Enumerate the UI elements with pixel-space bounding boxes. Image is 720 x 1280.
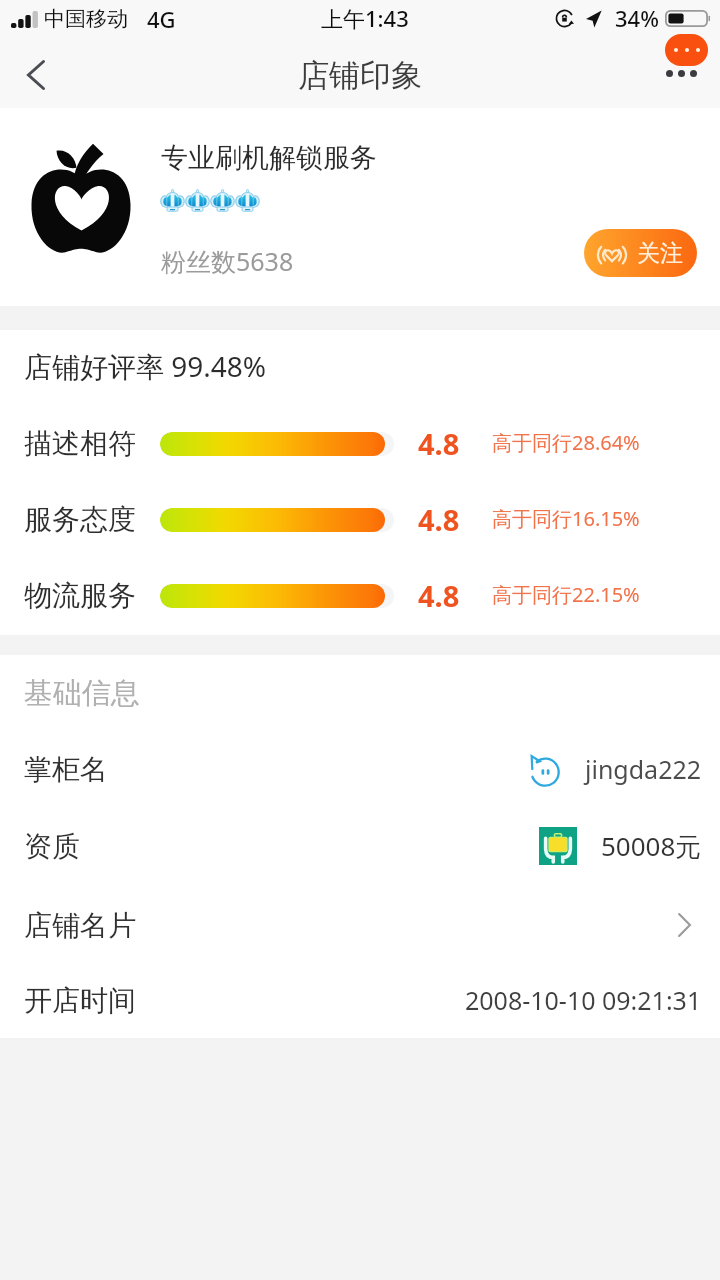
staticText: 服务态度 [24,502,136,536]
staticText: 掌柜名 [24,752,108,787]
staticText: 店铺印象 [298,56,422,95]
staticText: 4G [147,4,176,34]
staticText: 店铺名片 [24,908,136,943]
staticText: 开店时间 [24,983,136,1018]
staticText: 高于同行22.15% [492,581,640,608]
button[interactable]: 开店时间 [0,978,720,1022]
button[interactable]: 店铺名片 [0,903,720,947]
staticText: 物流服务 [24,578,136,612]
staticText: 专业刷机解锁服务 [161,141,377,175]
staticText: 4.8 [418,500,460,534]
staticText: 中国移动 [44,6,128,32]
staticText: 上午1:43 [321,3,409,33]
staticText: 2008-10-10 09:21:31 [465,983,702,1017]
staticText: 描述相符 [24,426,136,460]
staticText: 50008元 [601,828,702,864]
button[interactable]: 掌柜名 [0,747,720,791]
staticText: 高于同行28.64% [492,429,640,456]
staticText: jingda222 [585,752,702,786]
staticText: 基础信息 [24,675,140,712]
staticText: 4.8 [418,576,460,610]
staticText: 店铺好评率 99.48% [24,347,267,385]
staticText: 4.8 [418,424,460,458]
staticText: 关注 [637,239,683,268]
staticText: 资质 [24,829,80,864]
staticText: 粉丝数5638 [161,244,294,278]
button[interactable]: 关注 [584,229,697,277]
staticText: 34% [615,3,659,33]
button[interactable]: 资质 [0,824,720,868]
button[interactable]: More options [665,34,708,66]
staticText: 高于同行16.15% [492,505,640,532]
button[interactable]: Back [0,42,72,108]
